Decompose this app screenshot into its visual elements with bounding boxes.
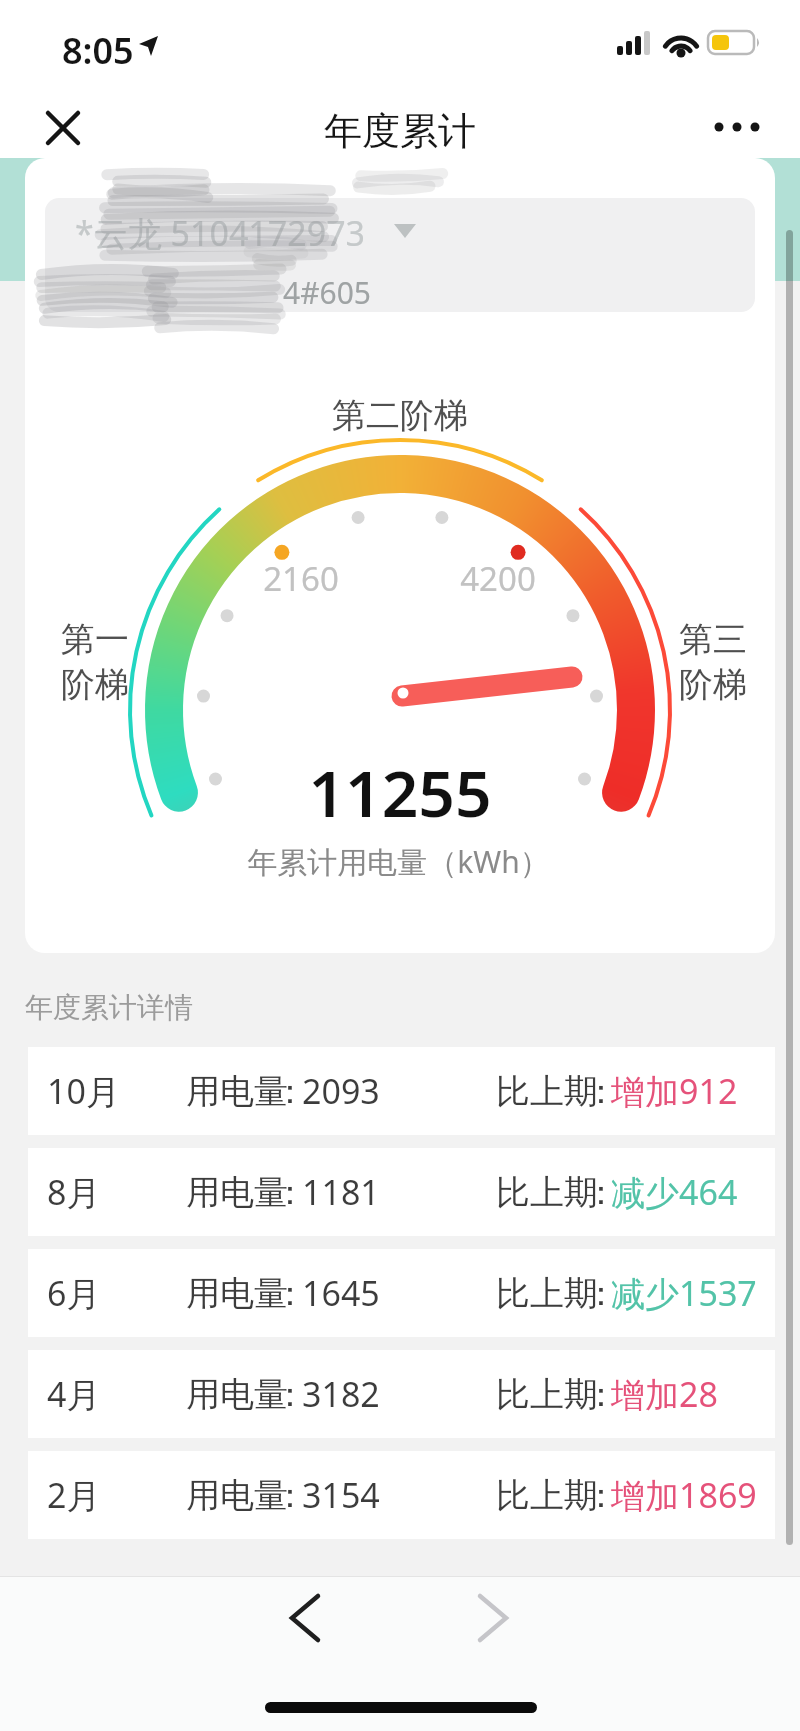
staticText: 3154 xyxy=(302,1472,380,1518)
staticText: 比上期 xyxy=(496,1272,598,1315)
staticText: 2月 xyxy=(47,1472,101,1518)
staticText: 增加912 xyxy=(611,1068,738,1114)
staticText: 年度累计详情 xyxy=(25,990,193,1025)
button[interactable] xyxy=(460,1585,530,1651)
staticText: 11255 xyxy=(308,749,492,836)
staticText: 2160 xyxy=(263,556,339,601)
staticText: 用电量 xyxy=(186,1070,288,1113)
staticText: 用电量 xyxy=(186,1171,288,1214)
staticText: 增加28 xyxy=(611,1371,718,1417)
button[interactable] xyxy=(45,198,755,312)
staticText: 年度累计 xyxy=(324,107,476,155)
staticText: 第一 阶梯 xyxy=(61,618,129,706)
button[interactable]: 6月 xyxy=(28,1249,775,1337)
button[interactable]: 10月 xyxy=(28,1047,775,1135)
staticText: 比上期 xyxy=(496,1373,598,1416)
staticText: ： xyxy=(584,1373,618,1416)
staticText: 8:05 xyxy=(62,26,134,75)
staticText: ： xyxy=(273,1272,307,1315)
staticText: 增加1869 xyxy=(611,1472,757,1518)
staticText: 用电量 xyxy=(186,1373,288,1416)
staticText: 4月 xyxy=(47,1371,101,1417)
staticText: 比上期 xyxy=(496,1070,598,1113)
staticText: 1181 xyxy=(302,1169,380,1215)
staticText: 减少464 xyxy=(611,1169,738,1215)
button[interactable] xyxy=(34,99,92,157)
staticText: ： xyxy=(584,1474,618,1517)
staticText: *云龙 5104172973 xyxy=(75,210,366,256)
staticText: 10月 xyxy=(47,1068,120,1114)
staticText: 用电量 xyxy=(186,1474,288,1517)
staticText: 4200 xyxy=(460,556,536,601)
staticText: 第二阶梯 xyxy=(332,394,468,437)
staticText: 用电量 xyxy=(186,1272,288,1315)
button[interactable] xyxy=(706,103,768,151)
staticText: 年累计用电量（kWh） xyxy=(247,841,550,882)
button[interactable] xyxy=(270,1585,340,1651)
staticText: ： xyxy=(273,1373,307,1416)
button[interactable]: 2月 xyxy=(28,1451,775,1539)
staticText: 8月 xyxy=(47,1169,101,1215)
button[interactable]: 8月 xyxy=(28,1148,775,1236)
button[interactable]: 4月 xyxy=(28,1350,775,1438)
staticText: ： xyxy=(584,1070,618,1113)
staticText: 6月 xyxy=(47,1270,101,1316)
staticText: ： xyxy=(584,1272,618,1315)
staticText: 1645 xyxy=(302,1270,380,1316)
staticText: 比上期 xyxy=(496,1474,598,1517)
staticText: ： xyxy=(273,1474,307,1517)
staticText: 第三 阶梯 xyxy=(679,618,747,706)
staticText: 4#605 xyxy=(283,272,372,313)
staticText: 减少1537 xyxy=(611,1270,757,1316)
staticText: 3182 xyxy=(302,1371,380,1417)
staticText: ： xyxy=(273,1171,307,1214)
staticText: ： xyxy=(273,1070,307,1113)
staticText: 2093 xyxy=(302,1068,380,1114)
staticText: ： xyxy=(584,1171,618,1214)
staticText: 比上期 xyxy=(496,1171,598,1214)
